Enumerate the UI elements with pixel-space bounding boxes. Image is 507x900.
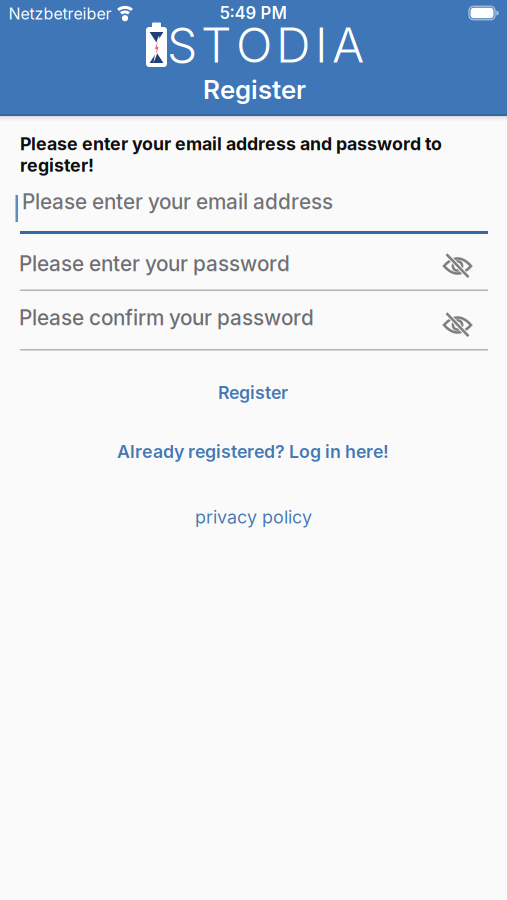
staticText: Register <box>203 74 306 105</box>
staticText: Please enter your password <box>19 251 290 276</box>
staticText: S <box>167 16 197 74</box>
staticText: Please enter your email address <box>22 189 333 214</box>
staticText: O <box>236 16 272 74</box>
button[interactable]: Please enter your password <box>19 251 488 291</box>
staticText: I <box>315 16 328 74</box>
staticText: Netzbetreiber <box>8 4 111 23</box>
staticText: D <box>276 16 311 74</box>
staticText: 5:49 PM <box>219 3 286 23</box>
staticText: A <box>332 16 364 74</box>
button[interactable]: privacy policy <box>195 506 312 528</box>
staticText: T <box>201 16 232 74</box>
staticText: Register <box>218 382 288 403</box>
button[interactable]: Show confirm password <box>442 312 472 338</box>
staticText: privacy policy <box>195 506 312 528</box>
staticText: Please confirm your password <box>19 305 314 330</box>
button[interactable]: Show password <box>442 253 472 279</box>
staticText: Please enter your email address and pass… <box>20 133 442 176</box>
button[interactable]: Please confirm your password <box>19 305 488 350</box>
button[interactable]: Please enter your email address <box>15 189 488 233</box>
button[interactable]: Already registered? Log in here! <box>117 441 389 462</box>
button[interactable]: Register <box>218 382 288 403</box>
staticText: Already registered? Log in here! <box>117 441 389 462</box>
